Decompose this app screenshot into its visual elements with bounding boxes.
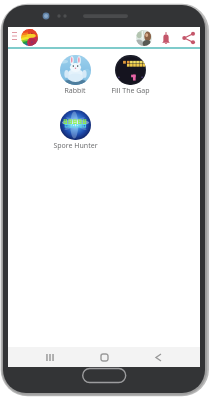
button[interactable]: Fill The Gap bbox=[104, 55, 156, 96]
button[interactable]: Share bbox=[179, 28, 198, 47]
button[interactable]: Spore Hunter bbox=[49, 110, 101, 151]
button[interactable]: App logo bbox=[21, 29, 38, 46]
button[interactable]: Menu bbox=[8, 29, 21, 42]
staticText: Spore Hunter bbox=[53, 141, 98, 151]
staticText: Rabbit bbox=[64, 86, 86, 96]
button[interactable]: Rabbit bbox=[49, 55, 101, 96]
staticText: Fill The Gap bbox=[111, 86, 150, 96]
button[interactable]: Notifications bbox=[158, 30, 174, 46]
button[interactable]: Profile bbox=[136, 30, 152, 46]
button[interactable]: Home bbox=[90, 347, 118, 367]
button[interactable]: Back bbox=[144, 347, 172, 367]
button[interactable]: Recents bbox=[36, 347, 64, 367]
